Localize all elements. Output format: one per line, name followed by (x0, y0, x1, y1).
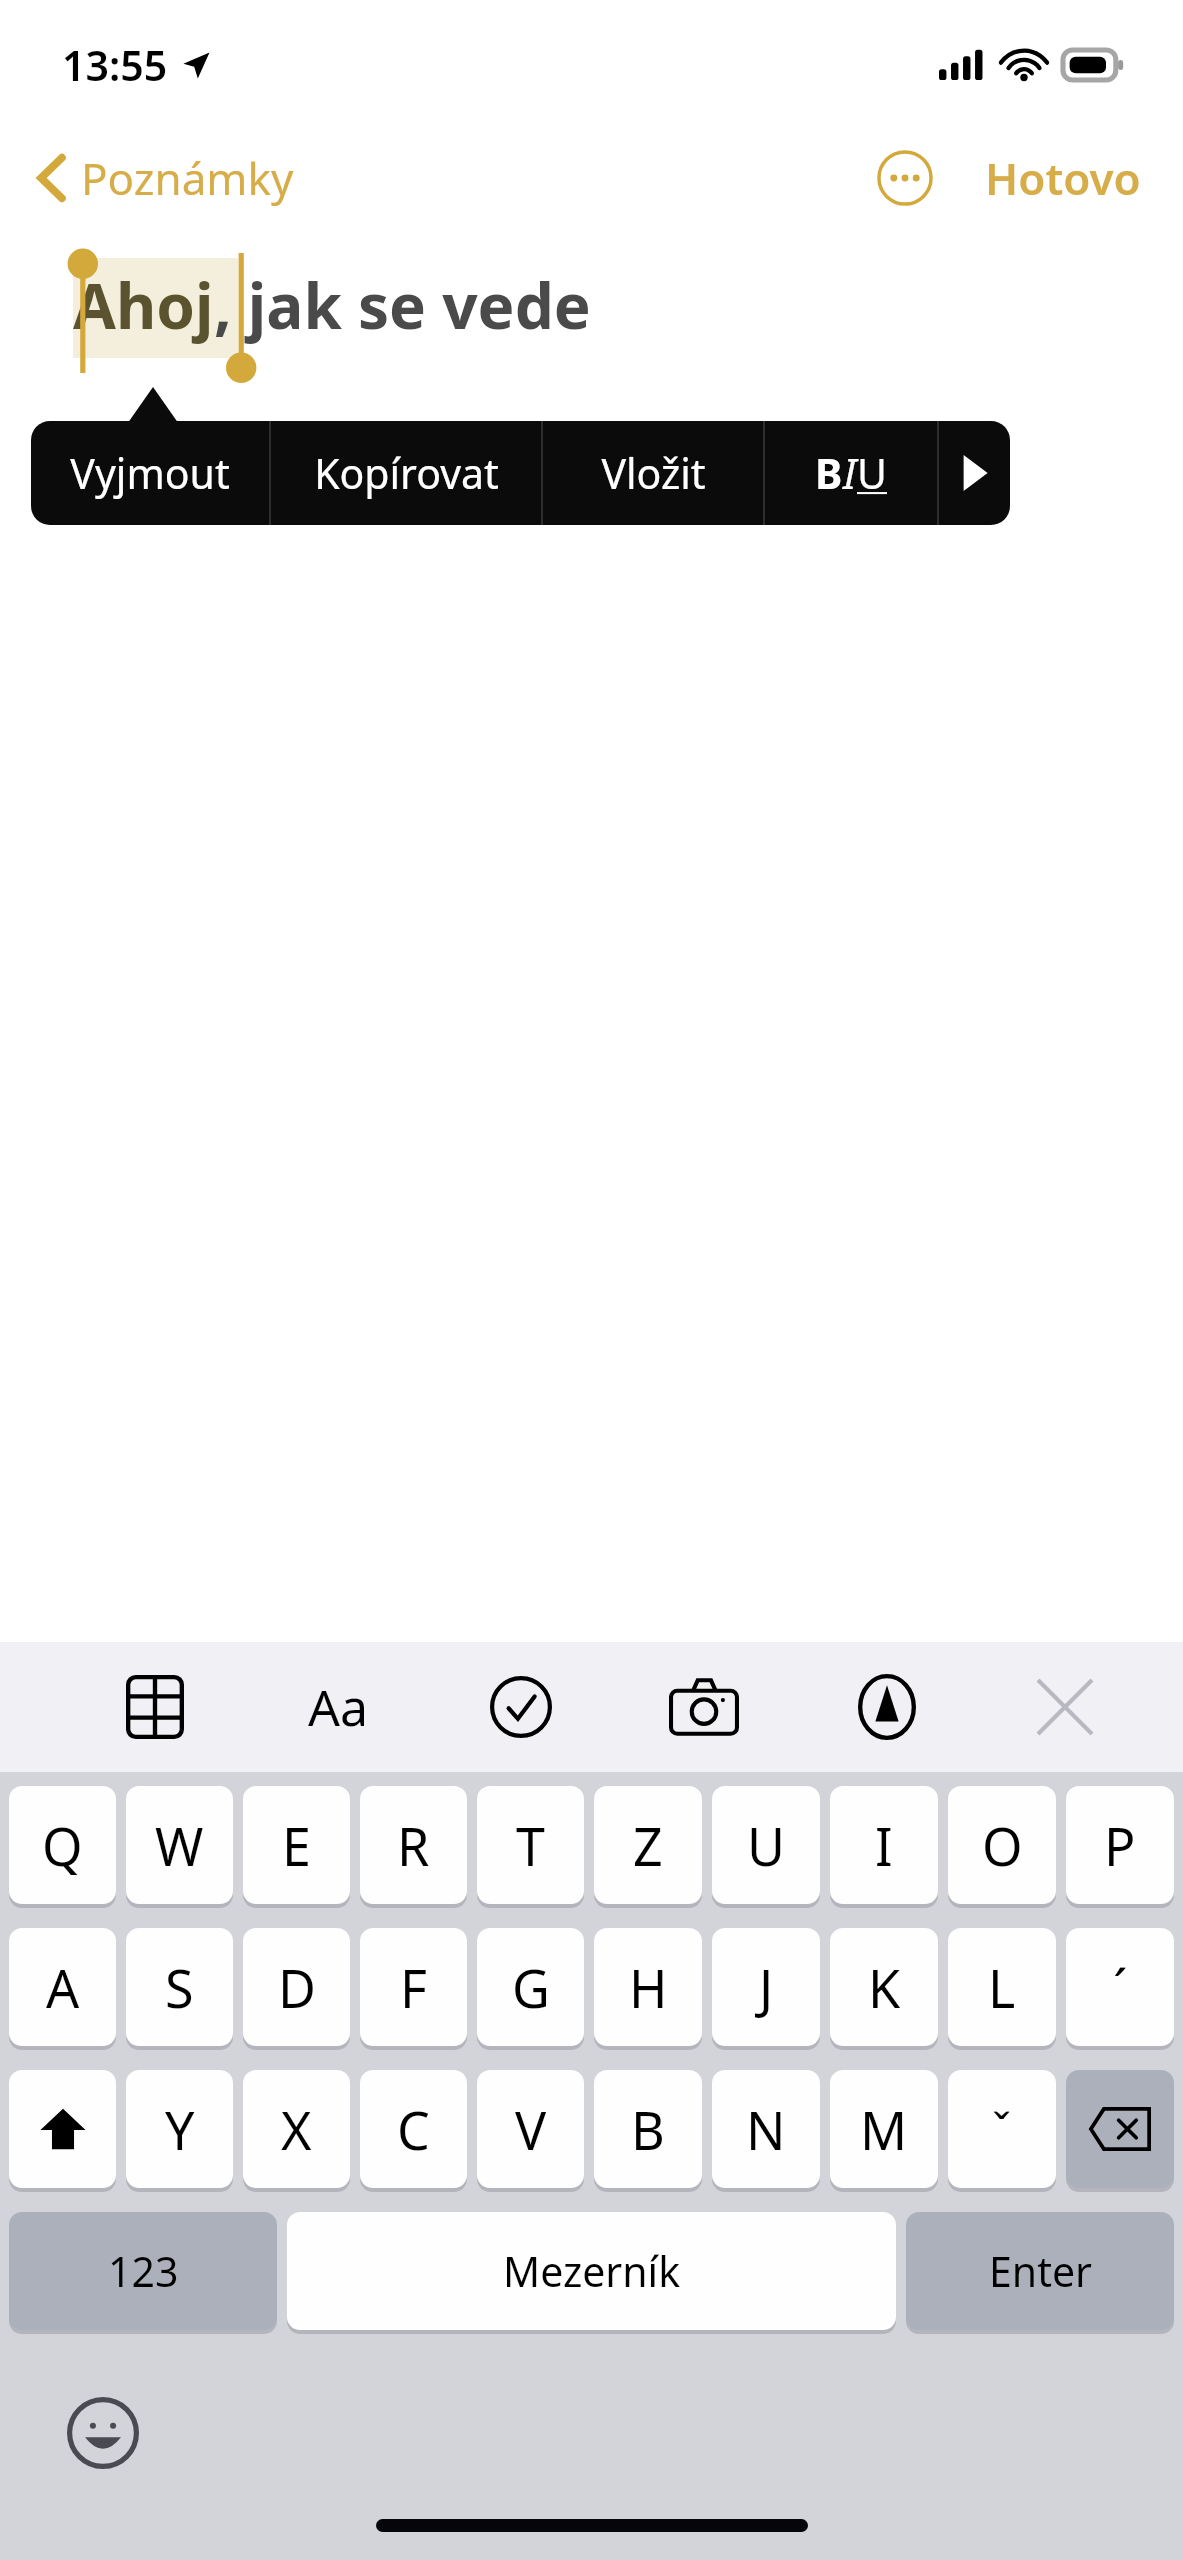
staticText: ˇ (992, 2098, 1012, 2161)
staticText: M (860, 2094, 908, 2165)
staticText: G (512, 1952, 550, 2023)
staticText: , jak se vede (214, 263, 591, 347)
button[interactable]: Z (594, 1786, 702, 1904)
button[interactable]: L (948, 1928, 1056, 2046)
staticText: N (746, 2094, 786, 2165)
staticText: I (843, 445, 857, 501)
button[interactable]: G (477, 1928, 584, 2046)
staticText: C (397, 2094, 430, 2165)
button[interactable]: X (243, 2070, 350, 2188)
button[interactable]: K (830, 1928, 938, 2046)
button[interactable]: S (126, 1928, 233, 2046)
button[interactable]: Hotovo (981, 144, 1145, 212)
staticText: Poznámky (81, 148, 294, 208)
button[interactable]: W (126, 1786, 233, 1904)
staticText: Hotovo (985, 148, 1141, 208)
button[interactable]: Kopírovat (271, 421, 541, 525)
button[interactable]: Emoji (58, 2388, 148, 2478)
button[interactable]: ´ (1066, 1928, 1174, 2046)
staticText: 13:55 (62, 37, 168, 93)
staticText: J (759, 1952, 774, 2023)
staticText: E (282, 1810, 311, 1881)
button[interactable]: Vyjmout (31, 421, 269, 525)
button[interactable]: Close keyboard (1025, 1667, 1105, 1747)
staticText: Vložit (601, 445, 706, 501)
staticText: Z (633, 1810, 663, 1881)
staticText: T (516, 1810, 545, 1881)
staticText: L (988, 1952, 1016, 2023)
staticText: B (631, 2094, 665, 2165)
staticText: W (155, 1810, 204, 1881)
button[interactable]: Backspace (1066, 2070, 1174, 2188)
staticText: B (815, 445, 843, 501)
button[interactable]: Shift (9, 2070, 116, 2188)
staticText: R (397, 1810, 430, 1881)
staticText: K (868, 1952, 901, 2023)
button[interactable]: N (712, 2070, 820, 2188)
staticText: Mezerník (503, 2243, 681, 2299)
button[interactable]: I (830, 1786, 938, 1904)
button[interactable]: R (360, 1786, 467, 1904)
button[interactable]: More options (871, 144, 939, 212)
button[interactable]: M (830, 2070, 938, 2188)
staticText: Kopírovat (314, 445, 499, 501)
button[interactable]: Enter (906, 2212, 1174, 2330)
button[interactable]: Q (9, 1786, 116, 1904)
button[interactable]: Mezerník (287, 2212, 896, 2330)
staticText: X (281, 2094, 312, 2165)
button[interactable]: D (243, 1928, 350, 2046)
staticText: Aa (308, 1673, 368, 1741)
button[interactable]: J (712, 1928, 820, 2046)
staticText: A (46, 1952, 80, 2023)
button[interactable]: Markup (842, 1662, 932, 1752)
button[interactable]: Table (110, 1662, 200, 1752)
button[interactable]: Y (126, 2070, 233, 2188)
staticText: H (629, 1952, 668, 2023)
button[interactable]: Vložit (543, 421, 763, 525)
staticText: Vyjmout (70, 445, 230, 501)
staticText: ´ (1113, 1952, 1128, 2023)
button[interactable]: F (360, 1928, 467, 2046)
button[interactable]: V (477, 2070, 584, 2188)
button[interactable]: Camera (659, 1662, 749, 1752)
staticText: Ahoj (73, 263, 214, 347)
staticText: Q (42, 1810, 83, 1881)
button[interactable]: Caron (948, 2070, 1056, 2188)
button[interactable]: E (243, 1786, 350, 1904)
staticText: F (400, 1952, 427, 2023)
staticText: U (857, 445, 887, 501)
button[interactable]: U (712, 1786, 820, 1904)
staticText: V (515, 2094, 547, 2165)
button[interactable]: T (477, 1786, 584, 1904)
button[interactable]: Poznámky (30, 140, 302, 216)
button[interactable]: B (594, 2070, 702, 2188)
staticText: S (165, 1952, 194, 2023)
button[interactable]: P (1066, 1786, 1174, 1904)
button[interactable]: C (360, 2070, 467, 2188)
staticText: U (747, 1810, 786, 1881)
staticText: Enter (989, 2243, 1092, 2299)
staticText: O (982, 1810, 1023, 1881)
staticText: D (278, 1952, 316, 2023)
staticText: I (875, 1810, 893, 1881)
staticText: Y (165, 2094, 195, 2165)
staticText: P (1104, 1810, 1136, 1881)
button[interactable]: Checklist (476, 1662, 566, 1752)
button[interactable]: Text format (293, 1662, 383, 1752)
button[interactable]: H (594, 1928, 702, 2046)
button[interactable]: More (939, 421, 1010, 525)
button[interactable]: B (765, 421, 937, 525)
button[interactable]: O (948, 1786, 1056, 1904)
staticText: 123 (108, 2243, 179, 2299)
button[interactable]: A (9, 1928, 116, 2046)
button[interactable]: 123 (9, 2212, 277, 2330)
